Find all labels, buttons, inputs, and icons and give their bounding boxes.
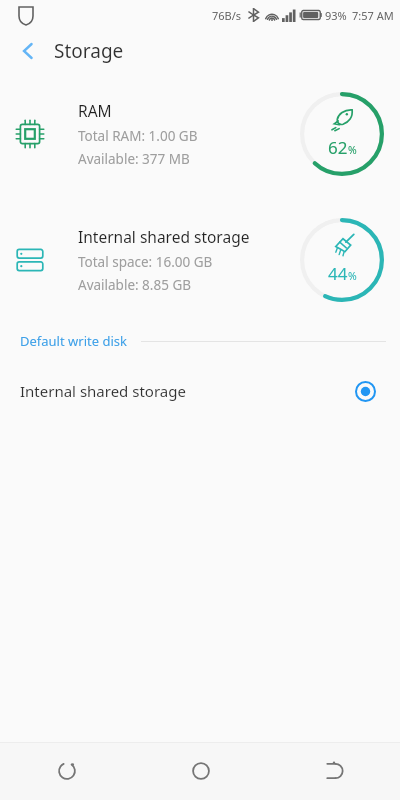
button[interactable]: Internal shared storage xyxy=(0,206,400,314)
staticText: 7:57 AM xyxy=(352,8,394,23)
staticText: RAM xyxy=(78,100,112,121)
staticText: 44 xyxy=(328,262,348,285)
staticText: % xyxy=(348,269,357,283)
staticText: Internal shared storage xyxy=(78,226,250,247)
staticText: Available: 8.85 GB xyxy=(78,276,192,294)
button[interactable]: Back xyxy=(8,31,48,71)
staticText: 93% xyxy=(325,8,347,23)
button[interactable]: Back xyxy=(267,742,400,800)
button[interactable]: RAM xyxy=(0,80,400,188)
staticText: % xyxy=(348,143,357,157)
staticText: Internal shared storage xyxy=(20,381,355,401)
staticText: Default write disk xyxy=(20,332,127,350)
staticText: Storage xyxy=(54,38,124,64)
staticText: 76B/s xyxy=(212,8,242,23)
button[interactable]: Recents xyxy=(0,742,134,800)
button[interactable]: Home xyxy=(134,742,267,800)
staticText: Available: 377 MB xyxy=(78,150,190,168)
staticText: 62 xyxy=(328,136,348,159)
staticText: Total RAM: 1.00 GB xyxy=(78,127,198,145)
staticText: Total space: 16.00 GB xyxy=(78,253,213,271)
button[interactable]: Internal shared storage xyxy=(0,368,400,414)
